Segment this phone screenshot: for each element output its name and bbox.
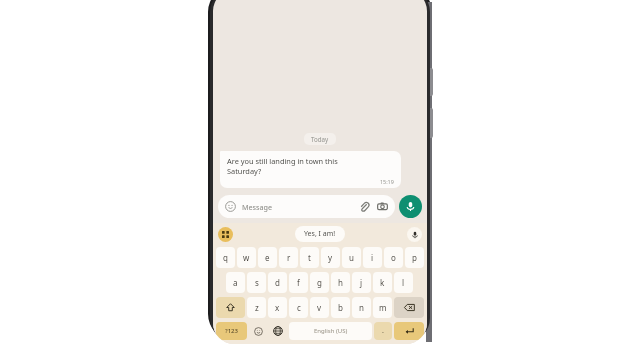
other: Volume bbox=[428, 68, 433, 96]
staticText: z bbox=[255, 302, 259, 313]
staticText: d bbox=[275, 277, 280, 288]
button[interactable]: p bbox=[405, 247, 424, 268]
button[interactable]: l bbox=[394, 272, 413, 293]
button[interactable]: s bbox=[247, 272, 266, 293]
button[interactable]: Voice message bbox=[399, 195, 422, 218]
staticText: j bbox=[360, 277, 363, 288]
button[interactable]: Keyboard toolbar bbox=[218, 227, 233, 242]
staticText: q bbox=[223, 252, 228, 263]
button[interactable]: d bbox=[268, 272, 287, 293]
button[interactable]: w bbox=[237, 247, 256, 268]
staticText: m bbox=[379, 302, 387, 313]
button[interactable]: English (US) bbox=[289, 322, 372, 340]
staticText: x bbox=[275, 302, 280, 313]
staticText: r bbox=[287, 252, 291, 263]
button[interactable]: Shift bbox=[216, 297, 245, 318]
button[interactable]: o bbox=[384, 247, 403, 268]
button[interactable]: q bbox=[216, 247, 235, 268]
button[interactable]: z bbox=[247, 297, 266, 318]
button[interactable]: Are you still landing in town this Satur… bbox=[220, 151, 401, 188]
staticText: n bbox=[359, 302, 364, 313]
button[interactable]: i bbox=[363, 247, 382, 268]
staticText: g bbox=[317, 277, 322, 288]
staticText: ?123 bbox=[225, 327, 238, 335]
staticText: u bbox=[349, 252, 354, 263]
staticText: i bbox=[371, 252, 374, 263]
staticText: a bbox=[233, 277, 238, 288]
button[interactable]: Language bbox=[269, 322, 287, 340]
staticText: y bbox=[328, 252, 333, 263]
button[interactable]: c bbox=[289, 297, 308, 318]
button[interactable]: Voice input bbox=[407, 227, 422, 242]
button[interactable]: g bbox=[310, 272, 329, 293]
staticText: s bbox=[255, 277, 259, 288]
staticText: Yes, I am! bbox=[304, 229, 336, 239]
button[interactable]: Yes, I am! bbox=[295, 226, 345, 242]
button[interactable]: Camera bbox=[377, 201, 388, 212]
staticText: Are you still landing in town this Satur… bbox=[227, 156, 338, 176]
button[interactable]: u bbox=[342, 247, 361, 268]
button[interactable]: t bbox=[300, 247, 319, 268]
button[interactable]: e bbox=[258, 247, 277, 268]
button[interactable]: Today bbox=[311, 135, 329, 143]
staticText: Today bbox=[311, 135, 329, 143]
staticText: t bbox=[308, 252, 311, 263]
button[interactable]: m bbox=[373, 297, 392, 318]
button[interactable]: v bbox=[310, 297, 329, 318]
staticText: . bbox=[382, 326, 384, 336]
other: Power bbox=[428, 108, 433, 138]
staticText: English (US) bbox=[314, 327, 348, 335]
button[interactable]: x bbox=[268, 297, 287, 318]
button[interactable]: ?123 bbox=[216, 322, 247, 340]
staticText: p bbox=[412, 252, 417, 263]
staticText: e bbox=[265, 252, 270, 263]
button[interactable]: h bbox=[331, 272, 350, 293]
staticText: b bbox=[338, 302, 343, 313]
button[interactable]: j bbox=[352, 272, 371, 293]
staticText: l bbox=[402, 277, 405, 288]
button[interactable]: Backspace bbox=[394, 297, 424, 318]
staticText: o bbox=[391, 252, 396, 263]
button[interactable]: b bbox=[331, 297, 350, 318]
staticText: w bbox=[243, 252, 250, 263]
button[interactable]: Attach bbox=[359, 201, 370, 212]
button[interactable]: Period bbox=[374, 322, 392, 340]
staticText: k bbox=[380, 277, 385, 288]
button[interactable]: Message bbox=[218, 195, 395, 218]
button[interactable]: Enter bbox=[394, 322, 424, 340]
button[interactable]: f bbox=[289, 272, 308, 293]
staticText: 15:19 bbox=[380, 178, 394, 185]
button[interactable]: n bbox=[352, 297, 371, 318]
button[interactable]: y bbox=[321, 247, 340, 268]
staticText: f bbox=[297, 277, 300, 288]
button[interactable]: k bbox=[373, 272, 392, 293]
staticText: v bbox=[317, 302, 322, 313]
button[interactable]: r bbox=[279, 247, 298, 268]
staticText: c bbox=[297, 302, 301, 313]
staticText: Message bbox=[242, 202, 272, 212]
button[interactable]: a bbox=[226, 272, 245, 293]
button[interactable]: Emoji bbox=[249, 322, 267, 340]
staticText: h bbox=[338, 277, 343, 288]
